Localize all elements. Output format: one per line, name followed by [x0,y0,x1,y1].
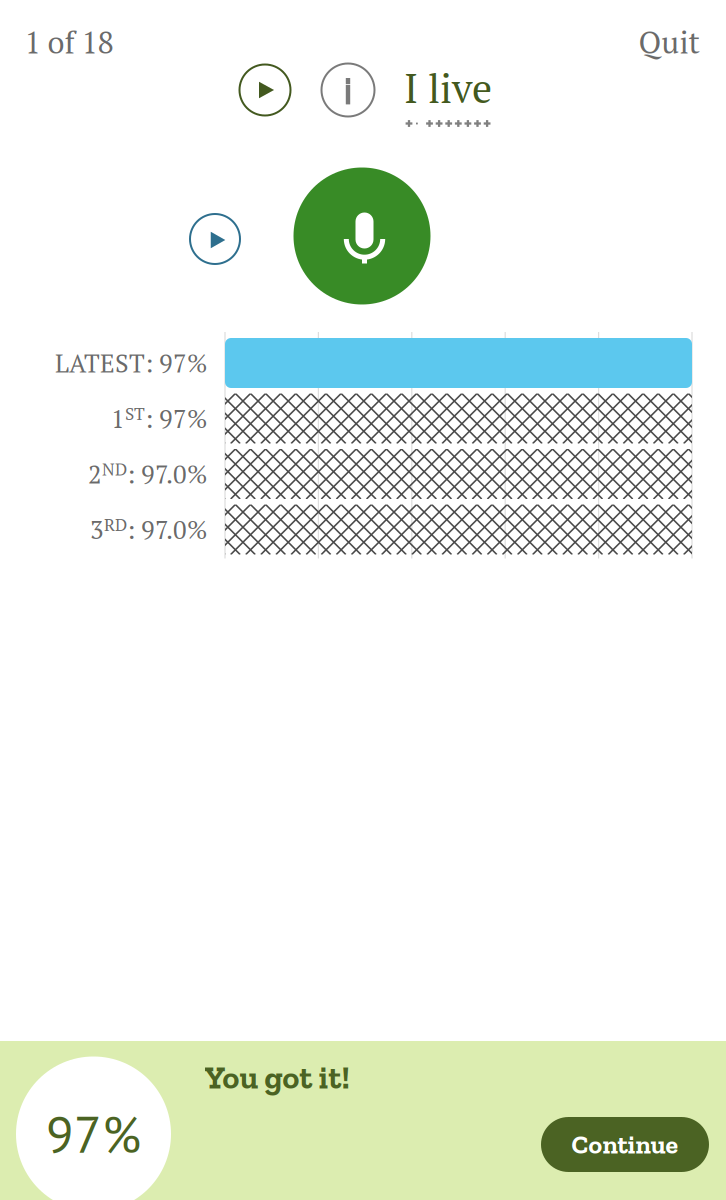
button[interactable]: Quit [628,14,709,70]
button[interactable]: Record [293,167,430,304]
staticText: 3RD: 97.0% [90,513,207,546]
staticText: 97% [46,1101,141,1167]
button[interactable]: Play word audio [238,63,292,117]
staticText: I live [404,61,492,114]
staticText: You got it! [204,1058,349,1097]
button[interactable]: Continue [541,1117,709,1172]
staticText: LATEST: 97% [55,346,207,380]
staticText: Continue [571,1129,678,1160]
button[interactable]: Word info [320,62,376,118]
staticText: 1 of 18 [24,22,113,62]
staticText: 1ST: 97% [111,402,207,435]
button[interactable]: 1 of 18 [14,14,123,70]
button[interactable]: Play my recording [188,212,242,266]
staticText: 2ND: 97.0% [88,458,207,490]
staticText: Quit [638,22,699,62]
